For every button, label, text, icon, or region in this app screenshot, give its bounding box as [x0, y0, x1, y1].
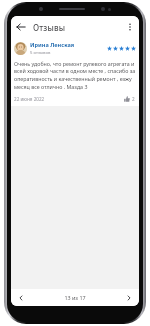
staticText: Очень удобно, что ремонт рулевого агрега… [14, 60, 136, 91]
button[interactable]: Полезный отзыв [123, 95, 136, 103]
button[interactable]: Следующая страница [123, 292, 135, 304]
button[interactable]: Предыдущая страница [15, 292, 27, 304]
button[interactable]: Назад [11, 17, 31, 37]
staticText: 22 июня 2022 [14, 96, 45, 102]
staticText: 2 [132, 96, 135, 102]
button[interactable]: Ещё [121, 18, 139, 36]
staticText: Отзывы [33, 22, 66, 33]
staticText: Ирина Ленская [30, 41, 75, 49]
staticText: 5 отзывов [30, 50, 51, 56]
staticText: 13 из 17 [64, 294, 86, 301]
button[interactable]: Ирина Ленская [11, 38, 139, 106]
